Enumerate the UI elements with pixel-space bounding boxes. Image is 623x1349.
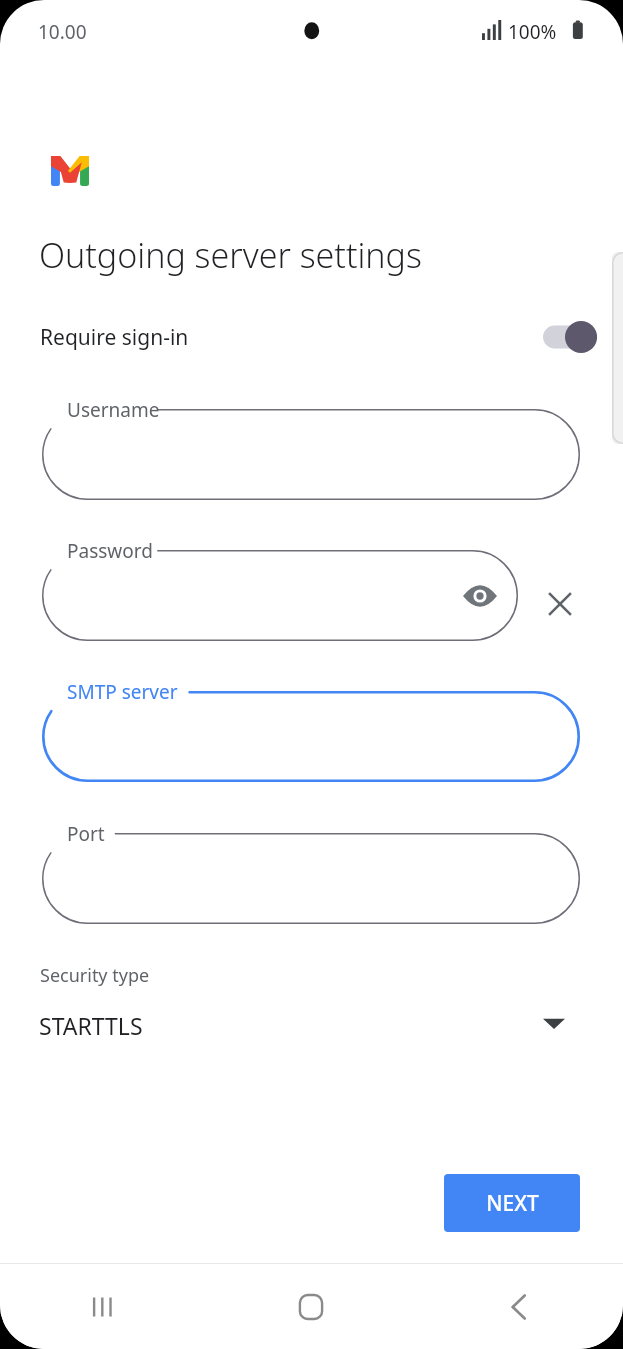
staticText: Username: [67, 397, 160, 423]
button[interactable]: Security type: [0, 955, 623, 1055]
button[interactable]: Clear password: [536, 580, 584, 628]
button[interactable]: Username: [42, 409, 580, 500]
staticText: Security type: [40, 963, 150, 988]
button[interactable]: SMTP server: [42, 691, 580, 782]
staticText: NEXT: [486, 1189, 539, 1218]
staticText: Port: [67, 821, 105, 847]
staticText: Password: [67, 538, 153, 564]
button[interactable]: NEXT: [444, 1174, 580, 1232]
button[interactable]: Port: [42, 833, 580, 924]
staticText: SMTP server: [67, 679, 178, 705]
staticText: 10.00: [38, 19, 87, 45]
button[interactable]: Back: [415, 1264, 623, 1349]
button[interactable]: Recent apps: [0, 1264, 207, 1349]
staticText: Require sign-in: [40, 323, 189, 352]
staticText: Outgoing server settings: [39, 232, 422, 278]
button[interactable]: Password: [42, 550, 518, 641]
staticText: STARTTLS: [39, 1010, 143, 1041]
button[interactable]: Show password: [456, 572, 504, 620]
button[interactable]: Home: [207, 1264, 415, 1349]
button[interactable]: Require sign-in: [0, 308, 623, 366]
staticText: 100%: [508, 19, 557, 45]
